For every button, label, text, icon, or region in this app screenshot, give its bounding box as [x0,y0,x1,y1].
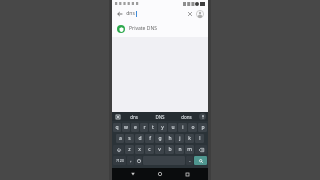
staticText: n [178,146,182,153]
staticText: o [191,124,195,131]
button[interactable]: y [158,123,167,132]
staticText: e [134,124,137,131]
staticText: x [138,146,141,153]
staticText: v [158,146,161,153]
staticText: t [152,124,154,131]
button[interactable]: Comma [127,156,134,165]
button[interactable]: Voice input [199,113,206,120]
button[interactable]: Private DNS [112,23,208,34]
staticText: s [128,135,131,142]
button[interactable]: Recents [181,168,193,180]
button[interactable]: Clear search [186,10,194,18]
staticText: i [182,124,184,131]
staticText: q [115,124,119,131]
button[interactable]: Home [154,168,166,180]
staticText: ?123 [116,158,124,163]
button[interactable]: q [113,123,121,132]
button[interactable]: u [168,123,177,132]
button[interactable]: ?123 [113,156,126,165]
button[interactable]: Search [194,156,207,165]
button[interactable]: Backspace [195,145,207,154]
staticText: k [188,135,191,142]
staticText: d [138,135,142,142]
button[interactable]: Shift [113,145,124,154]
button[interactable]: Clipboard [114,113,121,120]
button[interactable]: w [122,123,130,132]
button[interactable]: x [135,145,144,154]
button[interactable]: o [188,123,197,132]
button[interactable]: s [125,134,134,143]
button[interactable]: Back [115,9,124,18]
staticText: f [149,135,151,142]
staticText: h [168,135,172,142]
staticText: c [148,146,151,153]
staticText: r [143,124,146,131]
button[interactable]: n [175,145,184,154]
button[interactable]: Back [127,168,139,180]
staticText: dons [181,114,192,120]
staticText: dns [130,114,138,120]
staticText: p [201,124,205,131]
staticText: g [158,135,162,142]
staticText: l [199,135,201,142]
button[interactable]: h [165,134,174,143]
button[interactable]: e [131,123,139,132]
button[interactable]: DNS [147,112,173,121]
staticText: y [161,124,164,131]
button[interactable]: b [165,145,174,154]
button[interactable]: v [155,145,164,154]
staticText: DNS [155,114,165,120]
staticText: . [189,157,191,164]
button[interactable]: d [135,134,144,143]
button[interactable]: j [175,134,184,143]
button[interactable]: k [185,134,194,143]
staticText: a [119,135,122,142]
button[interactable]: dons [173,112,199,121]
button[interactable]: i [178,123,187,132]
staticText: Private DNS [129,25,157,32]
button[interactable]: f [145,134,154,143]
staticText: z [128,146,131,153]
button[interactable]: dns [121,112,147,121]
staticText: b [168,146,172,153]
button[interactable]: r [140,123,148,132]
button[interactable]: a [116,134,124,143]
button[interactable]: t [149,123,157,132]
staticText: dns [126,10,135,17]
button[interactable]: z [125,145,134,154]
staticText: , [130,157,132,164]
staticText: m [187,146,192,153]
button[interactable]: m [185,145,194,154]
button[interactable]: l [195,134,204,143]
button[interactable]: g [155,134,164,143]
button[interactable]: Account [195,9,205,19]
staticText: u [171,124,175,131]
button[interactable]: p [198,123,207,132]
staticText: w [124,124,128,131]
button[interactable]: c [145,145,154,154]
button[interactable]: Period [186,156,193,165]
staticText: j [179,135,181,142]
button[interactable]: Emoji [135,156,142,165]
